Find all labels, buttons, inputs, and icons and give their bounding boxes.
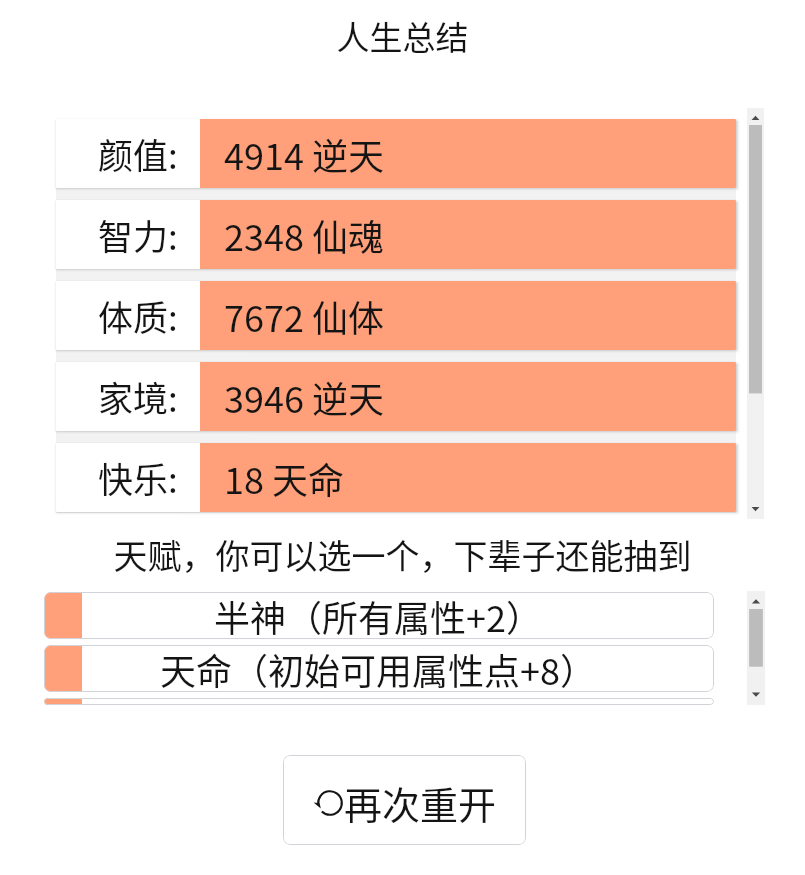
staticText: 2348 仙魂	[224, 209, 384, 261]
staticText: 天命（初始可用属性点+8）	[160, 645, 596, 690]
button[interactable]: 人中龙凤（智力+30）	[44, 698, 714, 705]
staticText: 快乐:	[98, 452, 178, 503]
staticText: 颜值:	[98, 128, 178, 179]
staticText: 4914 逆天	[224, 128, 384, 180]
button[interactable]: 颜值:	[56, 119, 736, 188]
staticText: 人中龙凤（智力+30）	[204, 698, 552, 703]
staticText: 3946 逆天	[224, 371, 384, 423]
button[interactable]: 智力:	[56, 200, 736, 269]
button[interactable]: 体质:	[56, 281, 736, 350]
button[interactable]: 家境:	[56, 362, 736, 431]
staticText: 人生总结	[0, 12, 805, 60]
button[interactable]: Scroll attributes list	[747, 108, 764, 519]
button[interactable]: 快乐:	[56, 443, 736, 512]
staticText: 天赋，你可以选一个，下辈子还能抽到	[0, 530, 805, 579]
button[interactable]: Scroll talents list	[747, 591, 765, 705]
button[interactable]: 半神（所有属性+2）	[44, 592, 714, 639]
button[interactable]: 天命（初始可用属性点+8）	[44, 645, 714, 692]
staticText: 家境:	[98, 371, 178, 422]
staticText: 智力:	[98, 209, 178, 260]
staticText: 体质:	[98, 290, 178, 341]
staticText: 18 天命	[224, 452, 345, 504]
staticText: 再次重开	[344, 775, 497, 830]
other: Restart	[316, 789, 344, 817]
staticText: 7672 仙体	[224, 290, 384, 342]
staticText: 半神（所有属性+2）	[214, 592, 542, 637]
button[interactable]: Restart	[283, 755, 526, 845]
